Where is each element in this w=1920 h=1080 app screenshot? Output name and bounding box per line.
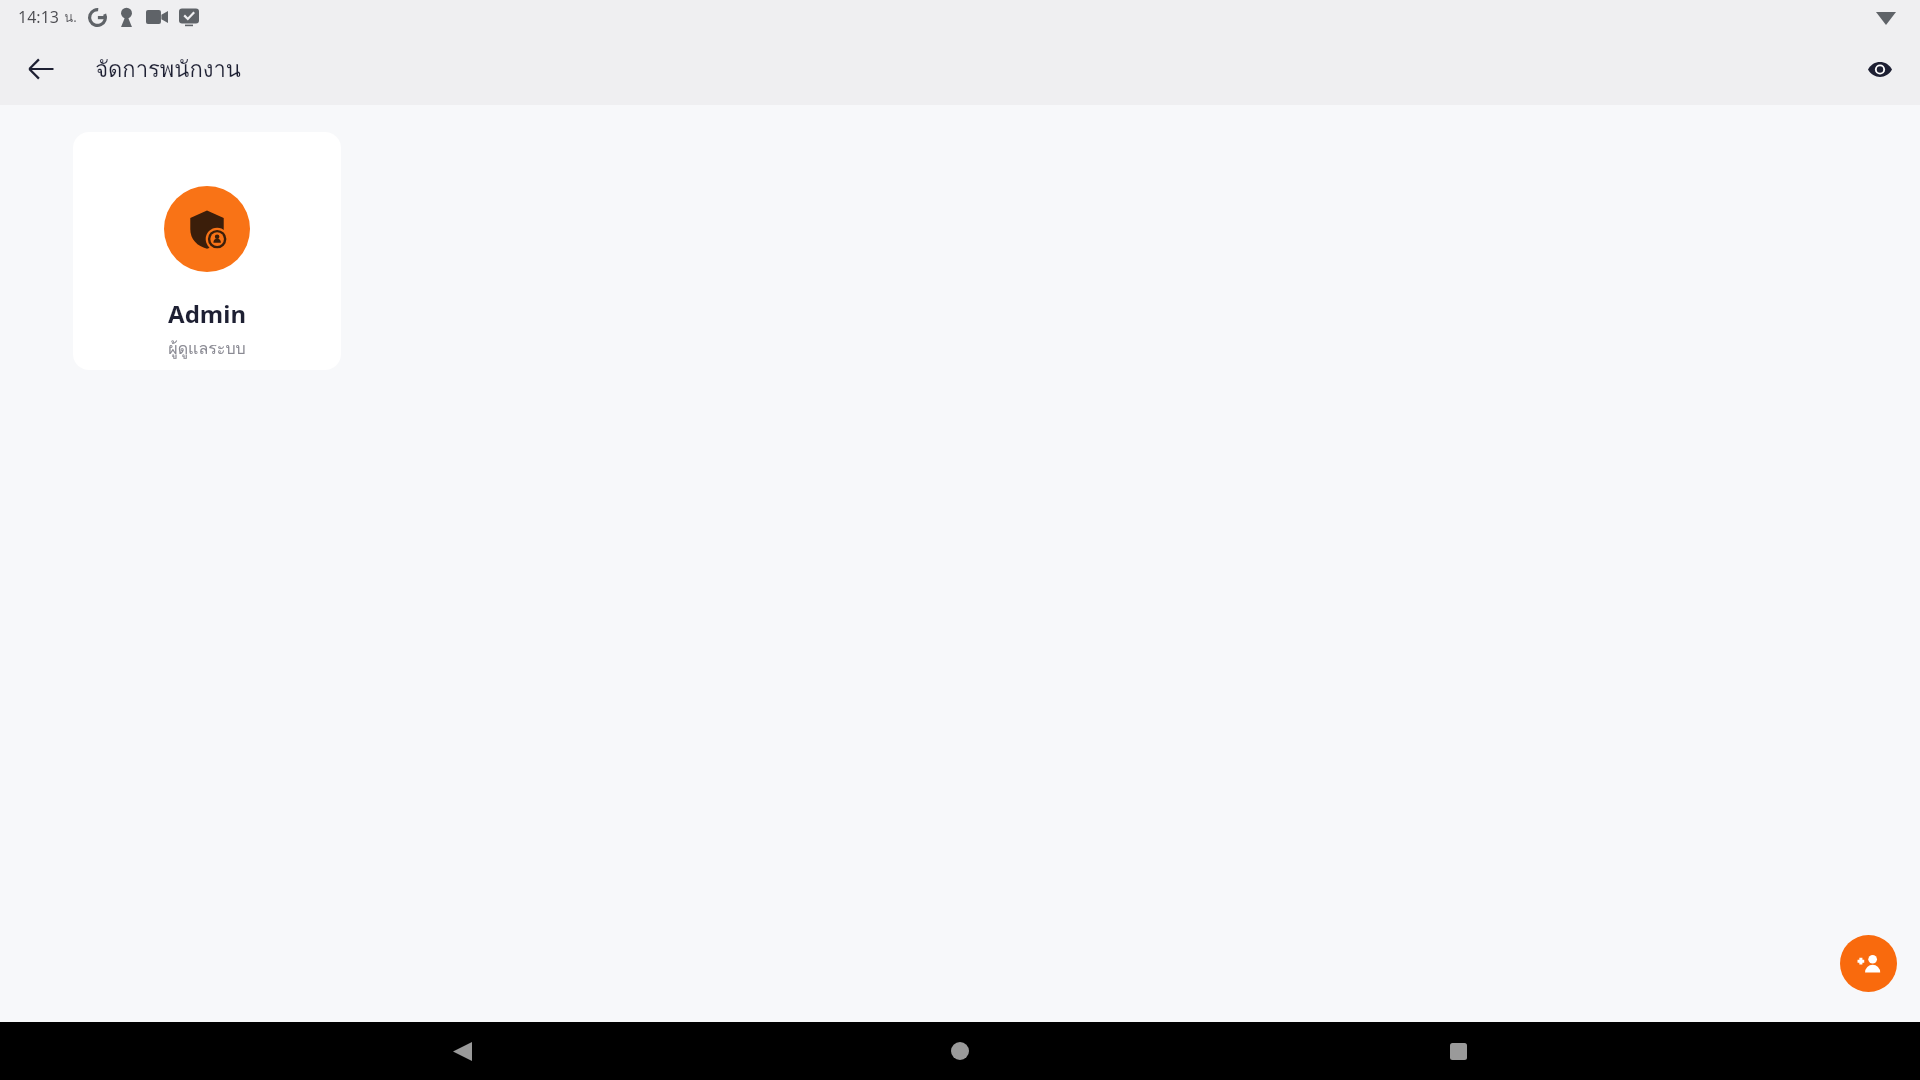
button[interactable]: Back	[16, 44, 66, 94]
staticText: 14:13	[18, 6, 59, 28]
button[interactable]: Home	[924, 1022, 996, 1080]
staticText: ผู้ดูแลระบบ	[168, 336, 246, 361]
button[interactable]: Admin	[73, 132, 341, 370]
staticText: Admin	[168, 297, 246, 330]
staticText: น.	[64, 7, 77, 28]
staticText: จัดการพนักงาน	[95, 52, 241, 87]
button[interactable]: Recent apps	[1422, 1022, 1494, 1080]
button[interactable]: Add employee	[1840, 935, 1897, 992]
button[interactable]: Back	[426, 1022, 498, 1080]
button[interactable]: Toggle visibility	[1856, 45, 1904, 93]
